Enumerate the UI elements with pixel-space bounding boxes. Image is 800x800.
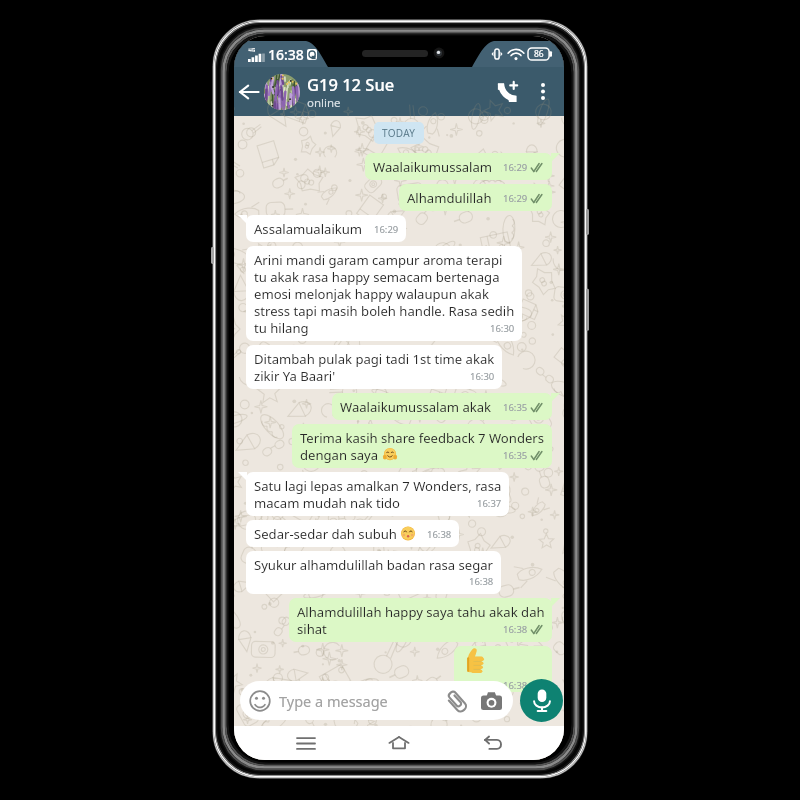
- staticText: 16:29: [503, 161, 528, 174]
- staticText: Sedar-sedar dah subuh: [254, 525, 397, 542]
- staticText: Terima kasih share feedback 7 Wonders: [300, 429, 545, 446]
- button[interactable]: Waalaikumussalam akak: [332, 393, 552, 420]
- staticText: Type a message: [279, 691, 388, 711]
- staticText: 16:35: [503, 449, 528, 462]
- button[interactable]: More options: [528, 67, 558, 116]
- button[interactable]: Video call: [486, 67, 528, 116]
- staticText: 16:29: [374, 223, 399, 236]
- button[interactable]: Home: [377, 726, 421, 760]
- button[interactable]: Syukur alhamdulillah badan rasa segar: [246, 551, 501, 594]
- button[interactable]: Assalamualaikum: [246, 215, 406, 242]
- button[interactable]: Back: [471, 726, 515, 760]
- button[interactable]: Record voice message: [520, 679, 563, 722]
- staticText: Waalaikumussalam akak: [340, 398, 492, 415]
- button[interactable]: Arini mandi garam campur aroma terapi: [246, 246, 522, 341]
- staticText: 16:29: [503, 192, 528, 205]
- button[interactable]: 16:38: [454, 646, 552, 692]
- staticText: tu akak rasa happy semacam bertenaga: [254, 268, 500, 285]
- staticText: 16:38: [427, 528, 452, 541]
- button[interactable]: G19 12 Sue: [264, 67, 486, 116]
- button[interactable]: Recent apps: [284, 726, 328, 760]
- button[interactable]: Attach file: [444, 689, 468, 713]
- staticText: dengan saya: [300, 446, 379, 463]
- staticText: 16:37: [477, 497, 502, 510]
- staticText: 86: [534, 48, 544, 60]
- staticText: Arini mandi garam campur aroma terapi: [254, 251, 503, 268]
- staticText: Satu lagi lepas amalkan 7 Wonders, rasa: [254, 477, 502, 494]
- button[interactable]: Ditambah pulak pagi tadi 1st time akak: [246, 345, 502, 389]
- button[interactable]: Satu lagi lepas amalkan 7 Wonders, rasa: [246, 472, 509, 516]
- button[interactable]: Camera: [479, 689, 503, 713]
- staticText: stress tapi masih boleh handle. Rasa sed…: [254, 302, 515, 319]
- staticText: G19 12 Sue: [307, 73, 395, 95]
- staticText: 16:38: [469, 575, 494, 588]
- staticText: emosi melonjak happy walaupun akak: [254, 285, 489, 302]
- staticText: zikir Ya Baari': [254, 367, 336, 384]
- staticText: online: [307, 95, 341, 111]
- button[interactable]: Sedar-sedar dah subuh: [246, 520, 459, 547]
- staticText: Ditambah pulak pagi tadi 1st time akak: [254, 350, 495, 367]
- staticText: sihat: [297, 620, 327, 637]
- staticText: 16:30: [470, 370, 495, 383]
- staticText: 16:35: [503, 401, 528, 414]
- button[interactable]: Waalaikumussalam: [365, 153, 552, 180]
- button[interactable]: Alhamdulillah: [399, 184, 552, 211]
- staticText: macam mudah nak tido: [254, 494, 401, 511]
- staticText: Alhamdulillah happy saya tahu akak dah: [297, 603, 545, 620]
- staticText: TODAY: [382, 126, 416, 140]
- staticText: 16:30: [490, 322, 515, 335]
- staticText: Syukur alhamdulillah badan rasa segar: [254, 556, 494, 573]
- button[interactable]: Emoji: [248, 689, 272, 713]
- staticText: Waalaikumussalam: [373, 158, 492, 175]
- staticText: 16:38: [268, 45, 304, 64]
- button[interactable]: Alhamdulillah happy saya tahu akak dah: [289, 598, 552, 642]
- button[interactable]: Emoji: [240, 681, 513, 720]
- staticText: Alhamdulillah: [407, 189, 492, 206]
- staticText: Assalamualaikum: [254, 220, 363, 237]
- staticText: 16:38: [503, 679, 528, 692]
- button[interactable]: Back: [234, 67, 264, 116]
- staticText: 16:38: [503, 623, 528, 636]
- button[interactable]: Terima kasih share feedback 7 Wonders: [292, 424, 552, 468]
- staticText: tu hilang: [254, 319, 309, 336]
